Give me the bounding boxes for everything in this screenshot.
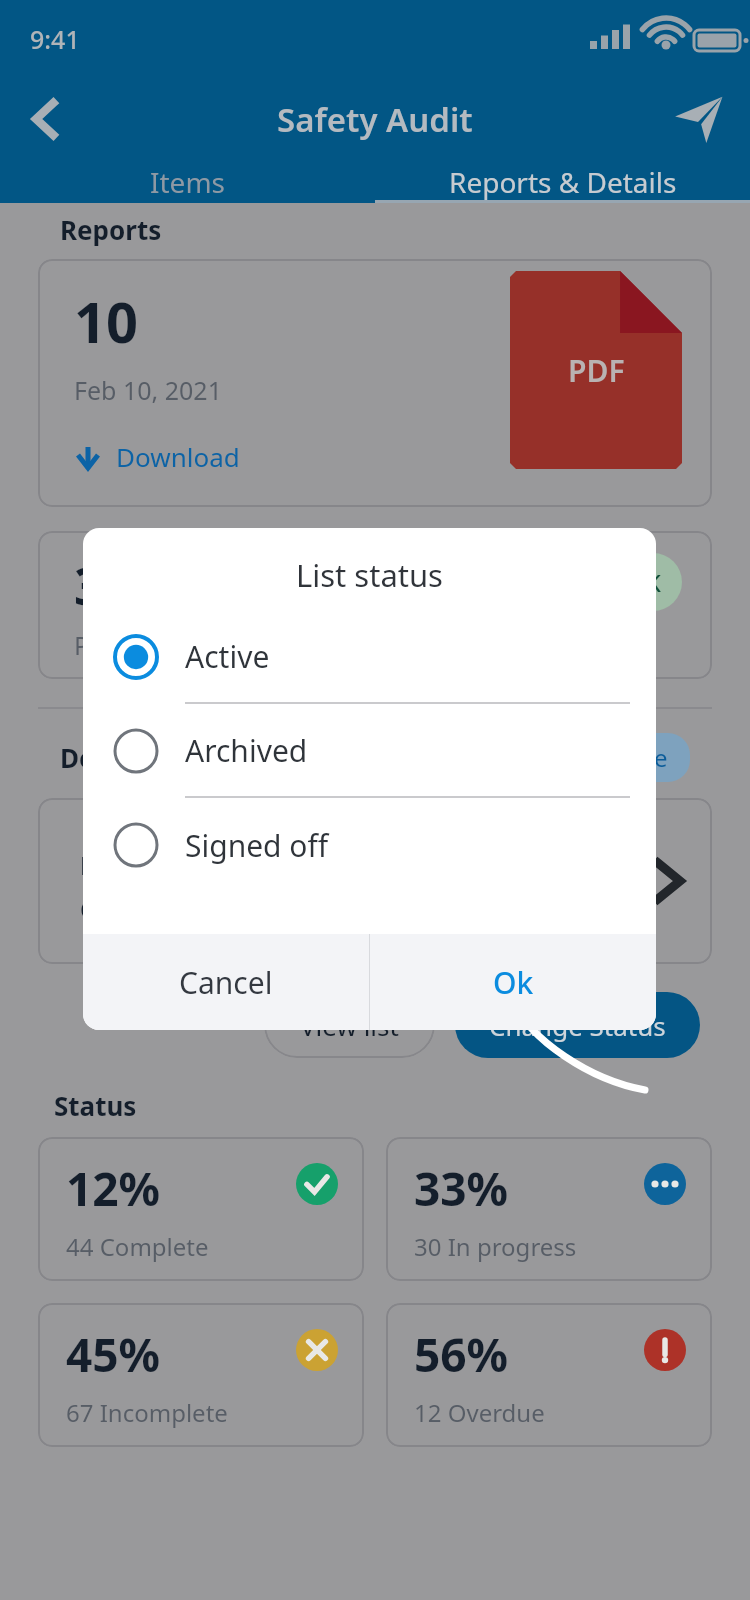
staticText: Created: [80,892,192,926]
staticText: Items [150,163,225,201]
button[interactable]: 10 [38,259,712,507]
button[interactable]: Items [0,160,375,203]
staticText: 10 [74,283,139,359]
button[interactable]: Send [666,87,730,151]
staticText: Archived [185,730,308,771]
button[interactable]: 3 [38,531,712,679]
staticText: Ok [493,962,534,1003]
button[interactable]: Download [74,439,240,474]
staticText: Feb 10, 2021 [74,373,222,407]
button[interactable]: 12% [38,1137,364,1281]
staticText: Details [60,740,150,775]
staticText: Reference: [80,848,220,882]
button[interactable]: Change Status [455,992,700,1058]
staticText: View list [300,1008,399,1043]
staticText: Cancel [179,962,273,1003]
staticText: Status [54,1088,137,1123]
staticText: 3 [74,549,104,620]
button[interactable]: Reference: [38,798,712,964]
button[interactable]: Reports & Details [375,160,750,203]
staticText: Reports & Details [449,163,677,201]
button[interactable]: Ok [370,934,656,1030]
staticText: PDF [74,628,121,662]
staticText: 001 [220,848,263,882]
staticText: 12 Overdue [414,1396,545,1429]
button[interactable]: 33% [386,1137,712,1281]
staticText: 45% [66,1323,161,1386]
button[interactable]: 45% [38,1303,364,1447]
staticText: Signed off [185,825,329,866]
button[interactable]: View list [264,992,435,1058]
staticText: 56% [414,1323,509,1386]
staticText: Active [185,636,270,677]
staticText: Active [600,741,668,774]
staticText: 9:41 [30,22,80,56]
staticText: Change Status [489,1008,666,1043]
button[interactable]: Cancel [83,934,369,1030]
staticText: List status [296,554,443,596]
button[interactable]: Back [14,88,76,150]
staticText: 12% [66,1157,161,1220]
staticText: 44 Complete [66,1230,209,1263]
staticText: OK [627,566,661,599]
staticText: 33% [414,1157,509,1220]
button[interactable]: 56% [386,1303,712,1447]
staticText: 30 In progress [414,1230,577,1263]
staticText: PDF [568,350,625,391]
staticText: 67 Incomplete [66,1396,228,1429]
button[interactable]: Archived [83,704,656,798]
staticText: Reports [60,212,162,247]
button[interactable]: Active [83,610,656,704]
button[interactable]: Active [600,741,668,774]
staticText: Download [116,439,240,474]
staticText: Safety Audit [277,97,473,142]
button[interactable]: Signed off [83,798,656,892]
